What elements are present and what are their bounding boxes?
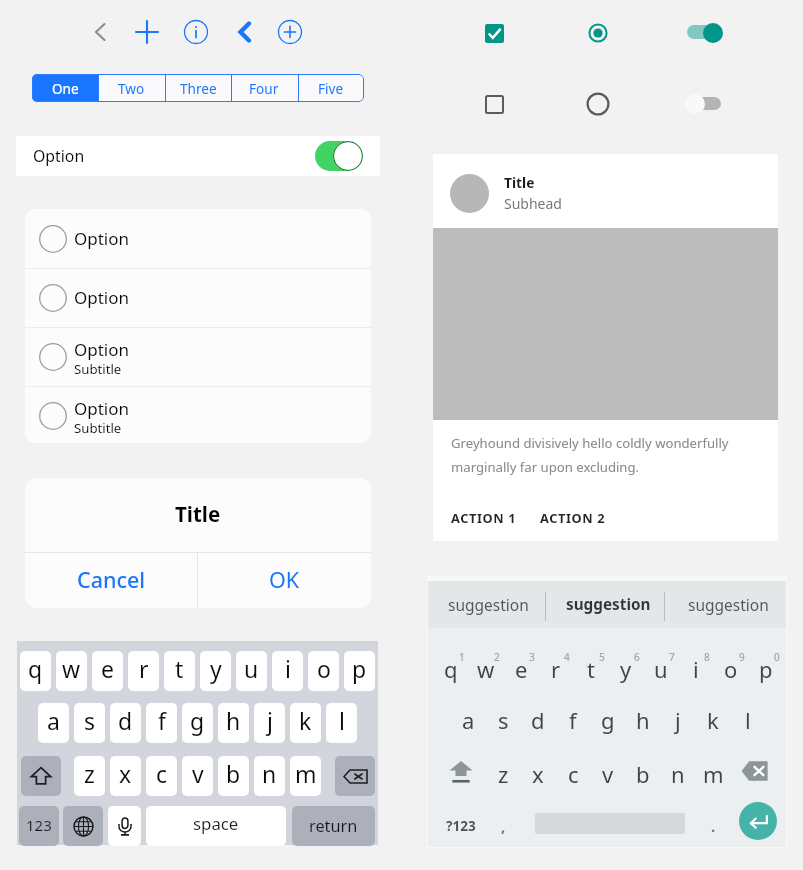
- button[interactable]: b: [218, 756, 249, 796]
- staticText: g: [190, 705, 205, 736]
- button[interactable]: v: [182, 756, 213, 796]
- button[interactable]: Voice input: [108, 806, 141, 846]
- button[interactable]: j: [254, 703, 285, 743]
- button[interactable]: Switch language: [63, 806, 103, 846]
- button[interactable]: o: [308, 651, 339, 691]
- button[interactable]: g: [182, 703, 213, 743]
- button[interactable]: Info: [182, 18, 210, 46]
- button[interactable]: w: [56, 651, 87, 691]
- button[interactable]: q: [435, 651, 467, 687]
- button[interactable]: n: [662, 756, 694, 792]
- button[interactable]: y: [200, 651, 231, 691]
- button[interactable]: k: [290, 703, 321, 743]
- button[interactable]: Option: [25, 327, 371, 386]
- button[interactable]: e: [92, 651, 123, 691]
- button[interactable]: t: [164, 651, 195, 691]
- button[interactable]: Cancel: [25, 552, 197, 607]
- button[interactable]: Two: [98, 74, 164, 102]
- staticText: suggestion: [448, 594, 529, 615]
- button[interactable]: Back: [86, 18, 114, 46]
- button[interactable]: Radio selected: [586, 21, 610, 45]
- button[interactable]: t: [575, 651, 607, 687]
- button[interactable]: p: [750, 651, 782, 687]
- button[interactable]: suggestion: [669, 581, 788, 627]
- button[interactable]: m: [697, 756, 729, 792]
- staticText: x: [532, 759, 544, 789]
- button[interactable]: Add: [133, 18, 161, 46]
- button[interactable]: y: [610, 651, 642, 687]
- button[interactable]: suggestion: [429, 581, 548, 627]
- button[interactable]: d: [110, 703, 141, 743]
- button[interactable]: f: [146, 703, 177, 743]
- button[interactable]: h: [627, 702, 659, 738]
- button[interactable]: x: [110, 756, 141, 796]
- button[interactable]: z: [487, 756, 519, 792]
- button[interactable]: w: [470, 651, 502, 687]
- button[interactable]: ACTION 2: [540, 509, 606, 526]
- button[interactable]: One: [32, 74, 98, 102]
- button[interactable]: a: [452, 702, 484, 738]
- button[interactable]: b: [627, 756, 659, 792]
- button[interactable]: Option: [16, 136, 380, 176]
- button[interactable]: Option: [25, 268, 371, 327]
- button[interactable]: o: [715, 651, 747, 687]
- staticText: e: [101, 653, 114, 684]
- button[interactable]: d: [522, 702, 554, 738]
- button[interactable]: Previous: [230, 18, 258, 46]
- button[interactable]: i: [680, 651, 712, 687]
- button[interactable]: Three: [165, 74, 231, 102]
- button[interactable]: g: [592, 702, 624, 738]
- button[interactable]: Switch on: [683, 21, 723, 45]
- button[interactable]: 123: [19, 806, 59, 846]
- button[interactable]: Checkbox unchecked: [485, 95, 504, 114]
- button[interactable]: s: [74, 703, 105, 743]
- button[interactable]: Option: [25, 209, 371, 268]
- button[interactable]: e: [505, 651, 537, 687]
- button[interactable]: space: [146, 806, 286, 846]
- button[interactable]: i: [272, 651, 303, 691]
- button[interactable]: p: [344, 651, 375, 691]
- button[interactable]: h: [218, 703, 249, 743]
- button[interactable]: r: [128, 651, 159, 691]
- button[interactable]: c: [557, 756, 589, 792]
- button[interactable]: c: [146, 756, 177, 796]
- button[interactable]: Backspace: [741, 760, 769, 782]
- button[interactable]: suggestion: [549, 581, 667, 627]
- button[interactable]: x: [522, 756, 554, 792]
- button[interactable]: ?123: [435, 811, 487, 841]
- button[interactable]: Checkbox checked: [485, 24, 504, 43]
- button[interactable]: Backspace: [335, 756, 375, 796]
- button[interactable]: .: [700, 811, 726, 841]
- button[interactable]: Add item: [276, 18, 304, 46]
- button[interactable]: n: [254, 756, 285, 796]
- button[interactable]: r: [540, 651, 572, 687]
- button[interactable]: Four: [231, 74, 297, 102]
- button[interactable]: Shift: [21, 756, 61, 796]
- button[interactable]: u: [236, 651, 267, 691]
- button[interactable]: j: [662, 702, 694, 738]
- button[interactable]: return: [292, 806, 375, 846]
- button[interactable]: Switch off: [683, 92, 723, 116]
- button[interactable]: Option: [25, 386, 371, 443]
- button[interactable]: z: [74, 756, 105, 796]
- button[interactable]: k: [697, 702, 729, 738]
- button[interactable]: l: [326, 703, 357, 743]
- button[interactable]: m: [290, 756, 321, 796]
- button[interactable]: v: [592, 756, 624, 792]
- button[interactable]: a: [38, 703, 69, 743]
- button[interactable]: ACTION 1: [451, 509, 517, 526]
- button[interactable]: s: [487, 702, 519, 738]
- staticText: return: [309, 815, 358, 837]
- button[interactable]: f: [557, 702, 589, 738]
- button[interactable]: l: [732, 702, 764, 738]
- button[interactable]: OK: [198, 552, 371, 607]
- button[interactable]: u: [645, 651, 677, 687]
- button[interactable]: Five: [298, 74, 364, 102]
- button[interactable]: q: [20, 651, 51, 691]
- staticText: 123: [26, 815, 52, 835]
- button[interactable]: Radio unselected: [586, 92, 610, 116]
- button[interactable]: Shift: [449, 760, 473, 785]
- button[interactable]: ,: [490, 811, 516, 841]
- button[interactable]: Enter: [739, 802, 777, 840]
